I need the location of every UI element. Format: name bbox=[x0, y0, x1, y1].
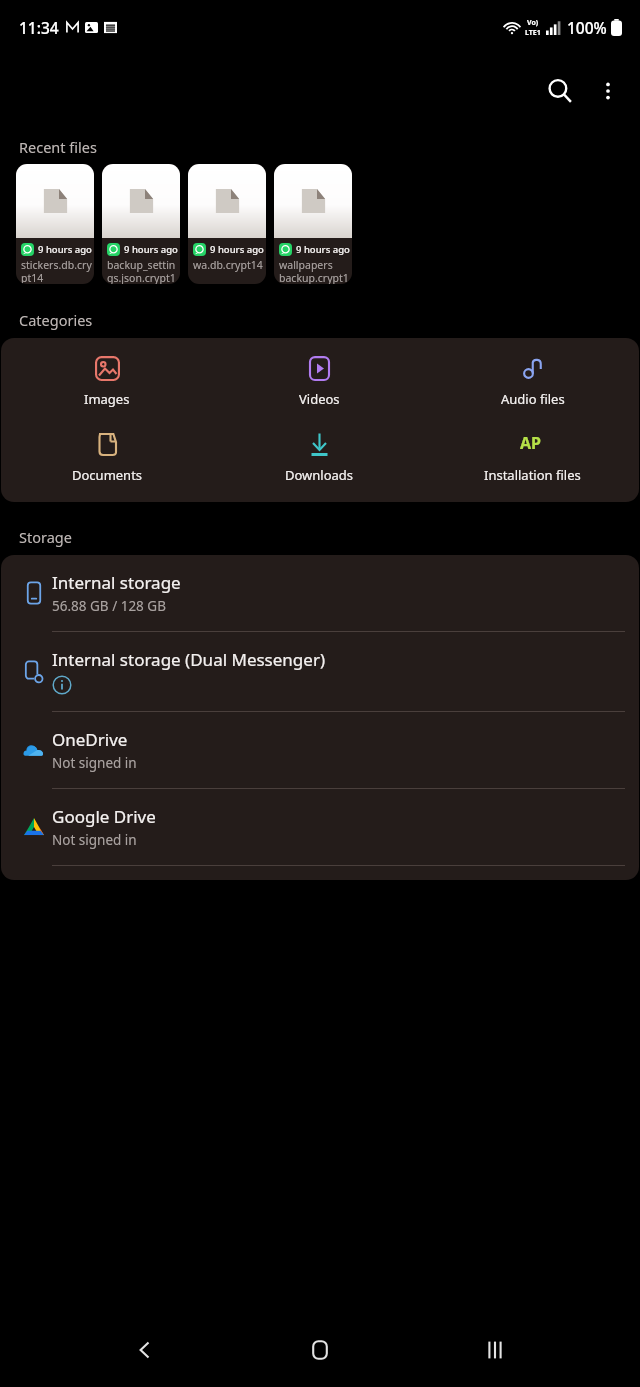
button[interactable]: 9 hours ago bbox=[102, 164, 180, 284]
staticText: wa.db.crypt14 bbox=[193, 258, 263, 272]
staticText: OneDrive bbox=[52, 728, 128, 751]
staticText: Vo) bbox=[527, 18, 539, 28]
button[interactable]: 9 hours ago bbox=[274, 164, 352, 284]
button[interactable]: OneDrive bbox=[1, 712, 639, 788]
button[interactable]: Internal storage bbox=[1, 555, 639, 631]
staticText: Storage bbox=[19, 527, 72, 547]
button[interactable]: 9 hours ago bbox=[16, 164, 94, 284]
button[interactable]: Google Drive bbox=[1, 789, 639, 865]
staticText: 9 hours ago bbox=[124, 243, 178, 256]
staticText: Not signed in bbox=[52, 754, 137, 772]
staticText: 9 hours ago bbox=[296, 243, 350, 256]
staticText: Images bbox=[84, 390, 130, 408]
button[interactable]: Videos bbox=[213, 352, 426, 412]
staticText: 11:34 bbox=[19, 17, 59, 38]
staticText: Audio files bbox=[501, 390, 565, 408]
button[interactable]: Documents bbox=[1, 428, 213, 488]
staticText: Videos bbox=[299, 390, 340, 408]
button[interactable]: Audio files bbox=[426, 352, 639, 412]
staticText: Categories bbox=[19, 310, 93, 330]
button[interactable]: Home bbox=[290, 1320, 350, 1380]
button[interactable]: Downloads bbox=[213, 428, 426, 488]
button[interactable]: 9 hours ago bbox=[188, 164, 266, 284]
staticText: 9 hours ago bbox=[210, 243, 264, 256]
staticText: Internal storage bbox=[52, 571, 181, 594]
staticText: Documents bbox=[72, 466, 143, 484]
button[interactable]: Back bbox=[115, 1320, 175, 1380]
button[interactable]: Recent apps bbox=[465, 1320, 525, 1380]
staticText: Not signed in bbox=[52, 831, 137, 849]
button[interactable]: APK bbox=[426, 428, 639, 488]
staticText: backup_settings.json.crypt14 bbox=[107, 258, 178, 284]
staticText: stickers.db.crypt14 bbox=[21, 258, 92, 284]
staticText: Google Drive bbox=[52, 805, 156, 828]
staticText: Internal storage (Dual Messenger) bbox=[52, 648, 326, 671]
button[interactable]: Images bbox=[1, 352, 213, 412]
staticText: LTE1 bbox=[525, 28, 541, 38]
button[interactable]: Info bbox=[52, 675, 72, 695]
staticText: 9 hours ago bbox=[38, 243, 92, 256]
staticText: APK bbox=[520, 432, 545, 457]
button[interactable]: Search bbox=[536, 67, 584, 115]
staticText: wallpapers backup.crypt14 bbox=[279, 258, 350, 284]
staticText: Recent files bbox=[19, 137, 97, 157]
button[interactable]: More options bbox=[584, 67, 632, 115]
staticText: 100% bbox=[567, 17, 607, 38]
staticText: Downloads bbox=[285, 466, 354, 484]
button[interactable]: Internal storage (Dual Messenger) bbox=[1, 632, 639, 711]
staticText: 56.88 GB / 128 GB bbox=[52, 597, 166, 615]
staticText: Installation files bbox=[484, 466, 581, 484]
